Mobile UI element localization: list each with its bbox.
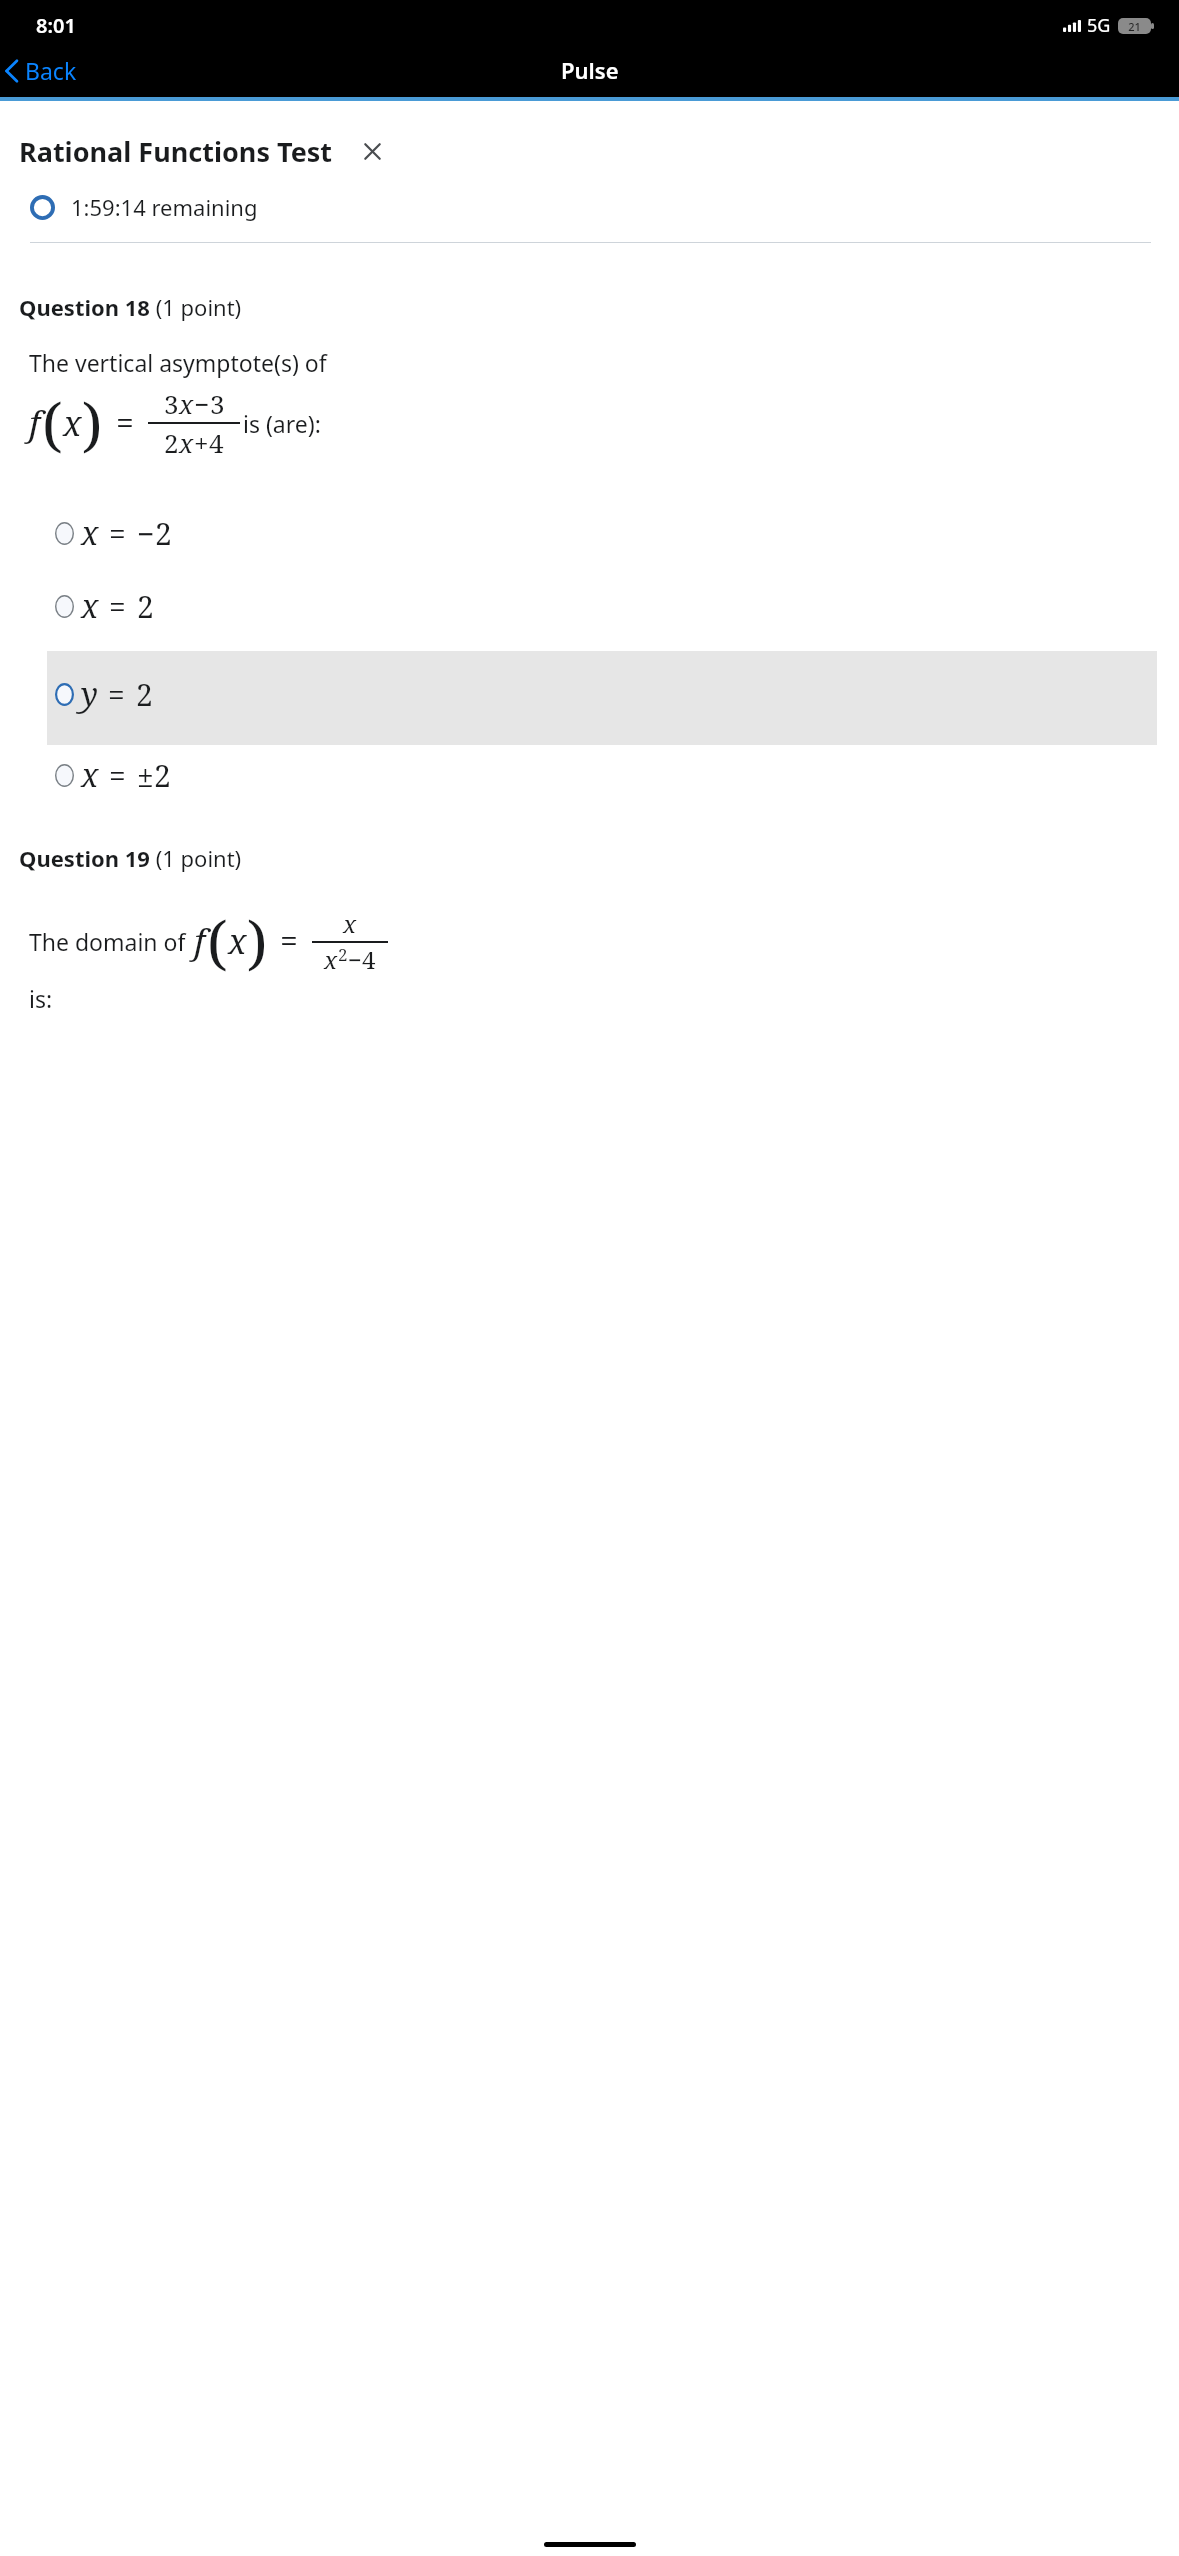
staticText: x	[324, 943, 338, 976]
staticText: Rational Functions Test	[19, 133, 333, 170]
staticText: −	[137, 513, 155, 554]
staticText: x	[228, 918, 247, 964]
staticText: =	[280, 919, 298, 963]
staticText: The vertical asymptote(s) of	[29, 347, 327, 378]
staticText: Question 19 (1 point)	[19, 843, 242, 873]
staticText: is (are):	[243, 408, 321, 439]
staticText: +	[194, 425, 209, 460]
staticText: 2	[136, 674, 153, 715]
staticText: Pulse	[561, 55, 619, 85]
staticText: f	[29, 399, 41, 447]
staticText: )	[82, 383, 103, 463]
staticText: (	[207, 901, 228, 981]
staticText: x	[81, 511, 99, 555]
staticText: −4	[348, 943, 376, 976]
staticText: 1:59:14 remaining	[71, 192, 258, 222]
staticText: =	[109, 586, 126, 627]
staticText: (	[42, 383, 63, 463]
staticText: 21	[1128, 19, 1141, 34]
staticText: x	[81, 753, 99, 797]
staticText: =	[109, 755, 126, 796]
staticText: =	[108, 674, 125, 715]
staticText: 5G	[1087, 13, 1111, 38]
staticText: 3	[164, 386, 179, 421]
staticText: 4	[209, 425, 224, 460]
staticText: 2	[338, 943, 348, 966]
staticText: )	[247, 901, 268, 981]
staticText: 8:01	[36, 12, 76, 39]
button[interactable]: Close test	[359, 138, 386, 165]
staticText: 2	[137, 586, 154, 627]
staticText: x	[343, 907, 357, 940]
staticText: 3	[210, 386, 225, 421]
staticText: ±	[137, 755, 154, 796]
button[interactable]: x	[47, 507, 1157, 559]
button[interactable]: Back	[0, 49, 89, 92]
staticText: x	[179, 425, 194, 460]
staticText: x	[81, 584, 99, 628]
staticText: is:	[29, 983, 53, 1014]
staticText: 2	[164, 425, 179, 460]
staticText: y	[81, 672, 98, 716]
button[interactable]: y	[47, 651, 1157, 745]
staticText: x	[63, 400, 82, 446]
staticText: =	[116, 401, 134, 445]
staticText: The domain of	[29, 926, 186, 957]
staticText: f	[194, 917, 206, 965]
button[interactable]: x	[47, 580, 1157, 632]
staticText: Back	[25, 55, 77, 86]
staticText: 2	[155, 513, 172, 554]
staticText: Question 18 (1 point)	[19, 292, 242, 322]
staticText: x	[179, 386, 194, 421]
button[interactable]: x	[47, 749, 1157, 801]
staticText: 2	[154, 755, 171, 796]
staticText: =	[109, 513, 126, 554]
staticText: −	[194, 386, 210, 421]
